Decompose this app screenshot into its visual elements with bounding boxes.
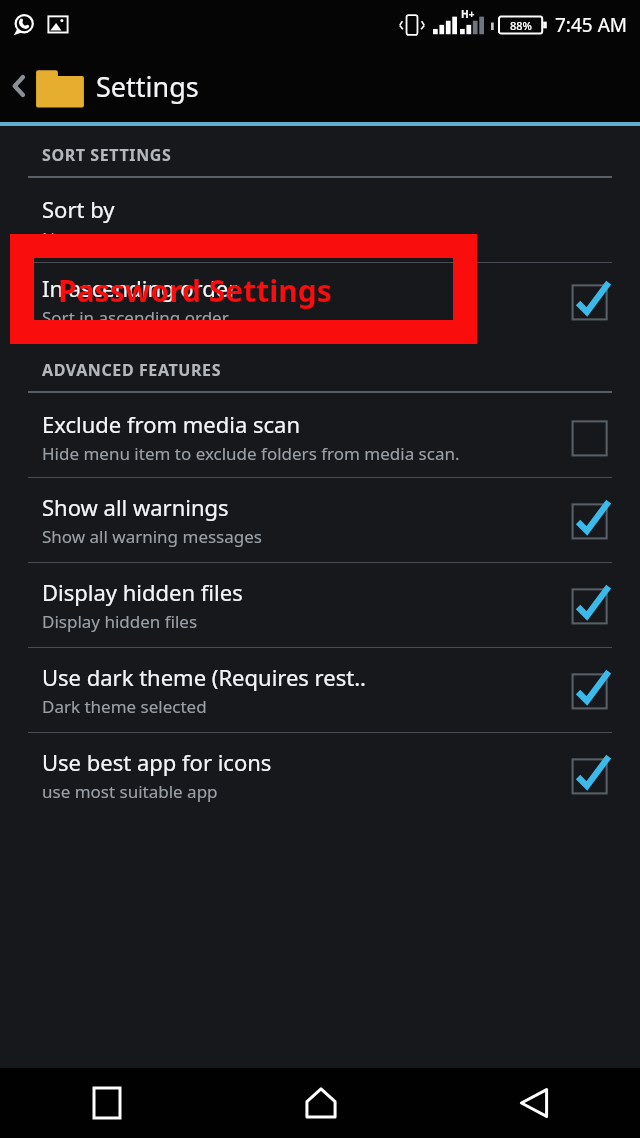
staticText: Display hidden files xyxy=(42,577,243,607)
button[interactable]: Display hidden files xyxy=(0,563,640,647)
staticText: Name xyxy=(42,227,90,250)
button[interactable]: Sort by xyxy=(0,184,640,262)
staticText: SORT SETTINGS xyxy=(42,144,172,166)
staticText: Show all warnings xyxy=(42,492,229,522)
staticText: ADVANCED FEATURES xyxy=(42,359,222,381)
button[interactable]: Home xyxy=(214,1068,427,1138)
button[interactable]: Show all warnings xyxy=(0,478,640,562)
staticText: Hide menu item to exclude folders from m… xyxy=(42,442,460,465)
button[interactable]: Use best app for icons xyxy=(0,733,640,817)
staticText: Sort by xyxy=(42,194,115,224)
staticText: Use dark theme (Requires rest.. xyxy=(42,662,366,692)
staticText: Dark theme selected xyxy=(42,695,207,718)
button[interactable]: Use dark theme (Requires rest.. xyxy=(0,648,640,732)
staticText: 88% xyxy=(510,18,532,33)
staticText: Display hidden files xyxy=(42,610,198,633)
staticText: Use best app for icons xyxy=(42,747,272,777)
button[interactable]: Back to folder xyxy=(0,50,640,122)
button[interactable]: Recent apps xyxy=(0,1068,214,1138)
staticText: Sort in ascending order xyxy=(42,306,229,329)
button[interactable]: In ascending order xyxy=(0,263,640,341)
button[interactable]: Exclude from media scan xyxy=(0,397,640,477)
staticText: Show all warning messages xyxy=(42,525,262,548)
staticText: Password Settings xyxy=(58,270,332,311)
staticText: Exclude from media scan xyxy=(42,409,301,439)
staticText: 7:45 AM xyxy=(555,12,628,38)
button[interactable]: Back xyxy=(427,1068,640,1138)
staticText: In ascending order xyxy=(42,273,238,303)
staticText: Settings xyxy=(96,68,199,105)
staticText: use most suitable app xyxy=(42,780,218,803)
staticText: H+ xyxy=(461,7,475,21)
